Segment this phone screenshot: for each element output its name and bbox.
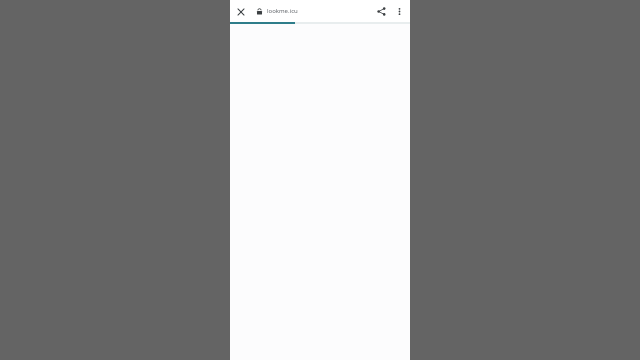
button[interactable]: Site information xyxy=(254,6,264,16)
staticText: lookme.icu xyxy=(267,7,298,15)
button[interactable]: Close xyxy=(233,4,248,19)
button[interactable]: lookme.icu xyxy=(267,0,372,22)
button[interactable]: More options xyxy=(391,3,408,20)
button[interactable]: Share xyxy=(372,2,390,20)
